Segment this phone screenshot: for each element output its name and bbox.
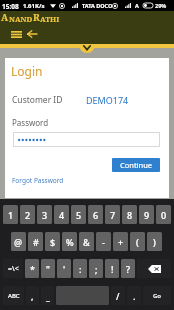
staticText: : bbox=[79, 263, 82, 275]
staticText: ' bbox=[63, 263, 66, 275]
button[interactable]: 1 bbox=[3, 205, 18, 224]
button[interactable]: 6 bbox=[88, 205, 103, 224]
staticText: 2 bbox=[25, 209, 31, 221]
staticText: " bbox=[46, 263, 50, 275]
button[interactable]: - bbox=[96, 232, 111, 251]
staticText: 4 bbox=[59, 209, 65, 221]
button[interactable]: 2 bbox=[20, 205, 35, 224]
staticText: 0 bbox=[161, 209, 167, 221]
staticText: 15:08 bbox=[2, 2, 19, 11]
button[interactable]: ' bbox=[57, 259, 71, 278]
button[interactable]: ABC bbox=[3, 286, 24, 305]
staticText: 6 bbox=[93, 209, 99, 221]
staticText: NAND bbox=[9, 14, 33, 24]
button[interactable]: + bbox=[113, 232, 128, 251]
staticText: 9 bbox=[144, 209, 150, 221]
button[interactable]: 0 bbox=[156, 205, 171, 224]
staticText: 5 bbox=[76, 209, 82, 221]
button[interactable]: & bbox=[79, 232, 94, 251]
button[interactable]: @ bbox=[11, 232, 26, 251]
staticText: , bbox=[31, 290, 34, 302]
staticText: R bbox=[33, 11, 40, 24]
button[interactable]: ? bbox=[121, 259, 135, 278]
button[interactable]: ) bbox=[147, 232, 162, 251]
button[interactable]: ! bbox=[105, 259, 119, 278]
button[interactable]: , bbox=[26, 286, 39, 305]
staticText: A bbox=[1, 11, 9, 24]
staticText: 1.61K/s bbox=[23, 2, 45, 10]
staticText: =\< bbox=[8, 264, 19, 274]
button[interactable]: 8 bbox=[122, 205, 137, 224]
staticText: Continue bbox=[120, 160, 153, 170]
staticText: 3 bbox=[42, 209, 48, 221]
button[interactable]: 5 bbox=[71, 205, 86, 224]
button[interactable]: Continue bbox=[112, 158, 160, 172]
staticText: Login bbox=[11, 63, 43, 79]
staticText: - bbox=[102, 236, 105, 248]
button[interactable]: Forgot Password bbox=[12, 176, 64, 185]
button[interactable]: % bbox=[62, 232, 77, 251]
staticText: Customer ID bbox=[12, 94, 63, 106]
staticText: 7 bbox=[110, 209, 116, 221]
staticText: A bbox=[135, 2, 139, 9]
button[interactable]: / bbox=[111, 286, 125, 305]
button[interactable]: Backspace bbox=[137, 259, 171, 278]
staticText: ; bbox=[95, 263, 98, 275]
button[interactable]: ( bbox=[130, 232, 145, 251]
staticText: Forgot Password bbox=[12, 176, 64, 185]
staticText: # bbox=[33, 236, 39, 248]
button[interactable]: Expand bbox=[79, 44, 95, 55]
staticText: ABC bbox=[8, 292, 20, 300]
staticText: + bbox=[118, 236, 124, 248]
staticText: @ bbox=[14, 236, 23, 248]
button[interactable]: Go bbox=[143, 286, 171, 305]
staticText: ( bbox=[136, 236, 139, 248]
button[interactable]: . bbox=[127, 286, 141, 305]
button[interactable]: * bbox=[25, 259, 39, 278]
staticText: ATHI bbox=[40, 14, 60, 24]
button[interactable]: : bbox=[73, 259, 87, 278]
button[interactable]: 4 bbox=[54, 205, 69, 224]
button[interactable]: 7 bbox=[105, 205, 120, 224]
button[interactable]: # bbox=[28, 232, 43, 251]
staticText: & bbox=[83, 236, 90, 248]
staticText: 8 bbox=[127, 209, 133, 221]
staticText: $ bbox=[50, 236, 56, 248]
staticText: % bbox=[66, 236, 74, 248]
staticText: * bbox=[30, 263, 35, 275]
staticText: 1 bbox=[8, 209, 14, 221]
staticText: TATA DOCO bbox=[82, 2, 113, 9]
staticText: Go bbox=[153, 292, 162, 300]
button[interactable]: _ bbox=[41, 286, 54, 305]
staticText: DEMO174 bbox=[86, 94, 129, 106]
button[interactable]: Back bbox=[26, 25, 37, 43]
staticText: Password bbox=[12, 117, 49, 128]
staticText: _ bbox=[46, 290, 50, 302]
staticText: ) bbox=[153, 236, 156, 248]
button[interactable]: =\< bbox=[3, 259, 23, 278]
button[interactable]: $ bbox=[45, 232, 60, 251]
staticText: ? bbox=[126, 263, 131, 275]
staticText: 29% bbox=[155, 2, 167, 9]
button[interactable]: " bbox=[41, 259, 55, 278]
button[interactable]: 3 bbox=[37, 205, 52, 224]
staticText: ! bbox=[111, 263, 114, 275]
button[interactable]: ; bbox=[89, 259, 103, 278]
button[interactable]: Menu bbox=[10, 25, 23, 43]
staticText: / bbox=[116, 290, 120, 302]
staticText: . bbox=[133, 290, 136, 302]
button[interactable]: 9 bbox=[139, 205, 154, 224]
